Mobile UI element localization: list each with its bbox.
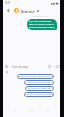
staticText: 9:41 xyxy=(5,1,11,5)
staticText: Hi, I need some help with my recent orde… xyxy=(29,20,55,29)
staticText: I understand how frustrating that is xyxy=(17,75,54,78)
staticText: Can you send me a photo? xyxy=(25,93,54,96)
button[interactable]: Let me check on that xyxy=(24,80,54,85)
button[interactable]: Emoji xyxy=(47,64,52,69)
button[interactable]: I'm sorry to hear that xyxy=(25,86,54,91)
button[interactable]: Camera xyxy=(55,64,60,69)
staticText: Brandon xyxy=(21,9,35,13)
button[interactable]: Can you send me a photo? xyxy=(24,92,54,97)
staticText: Let me check on that xyxy=(28,81,51,84)
staticText: Text message xyxy=(12,65,29,69)
staticText: Today 9:41 AM xyxy=(33,15,48,18)
button[interactable]: I understand how frustrating that is xyxy=(17,74,54,79)
staticText: I'm sorry to hear that xyxy=(28,87,51,90)
button[interactable]: Add attachment xyxy=(4,64,9,69)
staticText: B xyxy=(16,9,18,13)
button[interactable]: Hi, I need some help with my recent orde… xyxy=(27,19,57,30)
button[interactable]: Back xyxy=(5,7,12,14)
